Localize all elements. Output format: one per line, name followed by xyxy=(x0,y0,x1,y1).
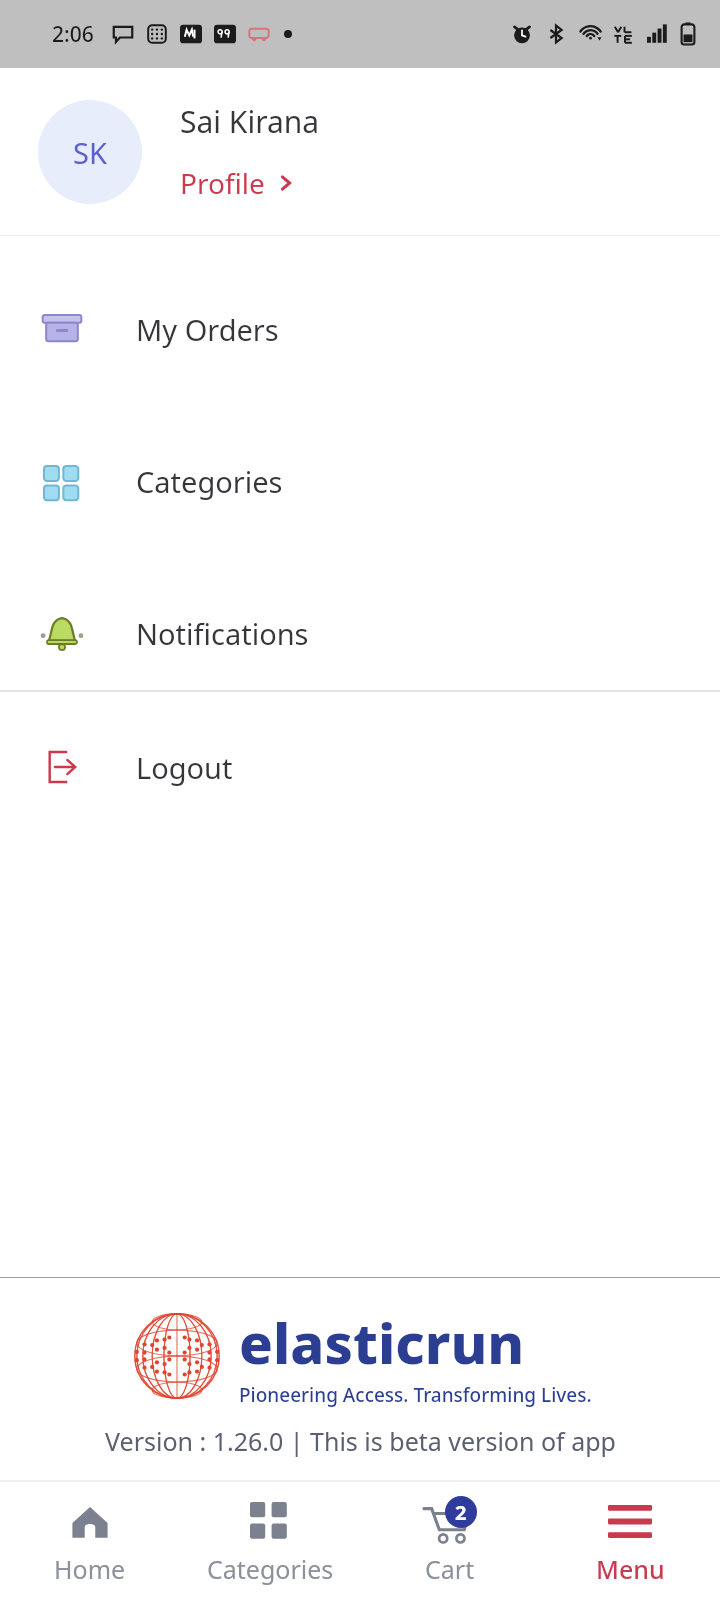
staticText: SK xyxy=(73,133,107,172)
button[interactable]: Categories xyxy=(180,1482,360,1600)
button[interactable]: My Orders xyxy=(0,300,720,358)
staticText: Profile xyxy=(180,164,265,202)
button[interactable]: Categories xyxy=(0,452,720,510)
button[interactable]: Menu xyxy=(540,1482,720,1600)
staticText: Sai Kirana xyxy=(180,101,320,142)
staticText: 2 xyxy=(455,1499,467,1526)
staticText: Menu xyxy=(596,1552,665,1586)
staticText: Pioneering Access. Transforming Lives. xyxy=(239,1382,592,1408)
staticText: elasticrun xyxy=(239,1304,525,1380)
button[interactable]: Profile xyxy=(180,164,295,202)
staticText: 2:06 xyxy=(52,20,94,49)
staticText: Categories xyxy=(207,1552,334,1586)
staticText: Categories xyxy=(136,462,283,501)
other: Cart, 2 items xyxy=(423,1496,477,1548)
staticText: Home xyxy=(54,1552,126,1586)
button[interactable]: Notifications xyxy=(0,604,720,662)
staticText: Notifications xyxy=(136,614,309,653)
staticText: Cart xyxy=(425,1552,475,1586)
staticText: Version : 1.26.0 | This is beta version … xyxy=(105,1424,616,1458)
button[interactable]: Home xyxy=(0,1482,180,1600)
button[interactable]: Cart, 2 items xyxy=(360,1482,540,1600)
staticText: Logout xyxy=(136,748,233,787)
button[interactable]: Logout xyxy=(0,738,720,796)
staticText: My Orders xyxy=(136,310,279,349)
